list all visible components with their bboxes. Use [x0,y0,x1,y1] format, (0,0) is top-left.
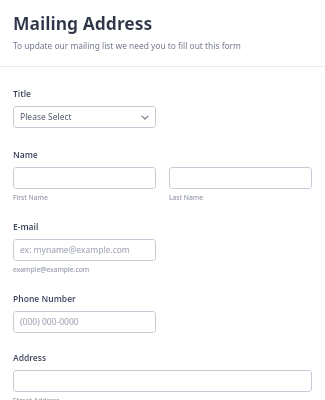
staticText: Phone Number [13,293,76,305]
staticText: Street Address [13,396,60,400]
button[interactable]: Please Select [13,106,156,128]
button[interactable]: Last Name [169,167,312,189]
staticText: Name [13,149,38,161]
staticText: E-mail [13,221,39,233]
staticText: To update our mailing list we need you t… [13,40,241,51]
staticText: Mailing Address [13,11,153,35]
button[interactable]: Street Address [13,370,312,392]
staticText: ex: myname@example.com [20,244,130,256]
staticText: Please Select [20,111,72,123]
staticText: Address [13,352,47,364]
staticText: (000) 000-0000 [20,316,79,328]
staticText: Last Name [169,193,204,202]
button[interactable]: E-mail [13,239,156,261]
button[interactable]: First Name [13,167,156,189]
button[interactable]: Phone Number [13,311,156,333]
other: Open dropdown [140,112,150,122]
staticText: First Name [13,193,48,202]
staticText: Title [13,88,32,100]
staticText: example@example.com [13,265,90,274]
